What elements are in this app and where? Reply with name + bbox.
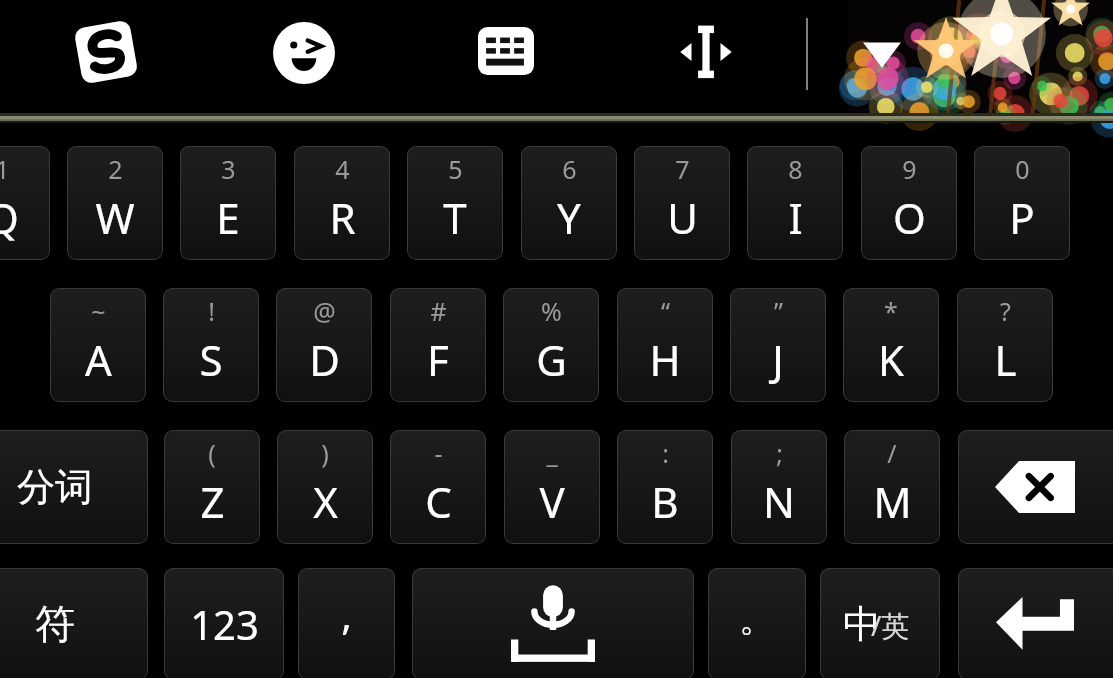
staticText: %	[541, 294, 562, 328]
staticText: L	[994, 331, 1017, 388]
staticText: B	[651, 473, 679, 530]
staticText: Q	[0, 189, 19, 246]
staticText: 9	[902, 152, 917, 186]
staticText: !	[208, 294, 215, 328]
button[interactable]: 分词	[0, 430, 148, 544]
staticText: Y	[557, 189, 581, 246]
button[interactable]: H	[617, 288, 713, 402]
button[interactable]: U	[634, 146, 730, 260]
staticText: )	[321, 436, 329, 470]
staticText: C	[425, 473, 452, 530]
button[interactable]: P	[974, 146, 1070, 260]
staticText: Z	[200, 473, 225, 530]
button[interactable]: R	[294, 146, 390, 260]
staticText: D	[309, 331, 340, 388]
button[interactable]: More options	[860, 36, 904, 72]
button[interactable]: O	[861, 146, 957, 260]
staticText: R	[329, 189, 356, 246]
staticText: ”	[774, 294, 783, 328]
staticText: ~	[91, 294, 106, 328]
staticText: J	[772, 331, 784, 388]
staticText: K	[878, 331, 904, 388]
button[interactable]: T	[407, 146, 503, 260]
staticText: 7	[675, 152, 690, 186]
staticText: ,	[341, 587, 352, 641]
button[interactable]: S	[163, 288, 259, 402]
staticText: V	[539, 473, 565, 530]
staticText: _	[546, 436, 558, 470]
staticText: 分词	[17, 463, 93, 511]
staticText: O	[893, 189, 926, 246]
staticText: 6	[562, 152, 577, 186]
button[interactable]: Move cursor	[673, 22, 739, 82]
staticText: E	[216, 189, 240, 246]
staticText: #	[430, 294, 447, 328]
button[interactable]: Backspace	[958, 430, 1113, 544]
staticText: F	[427, 331, 449, 388]
staticText: 0	[1015, 152, 1030, 186]
button[interactable]: Emoji	[272, 22, 336, 84]
button[interactable]: X	[277, 430, 373, 544]
button[interactable]: 符	[0, 568, 148, 678]
staticText: (	[208, 436, 216, 470]
button[interactable]: E	[180, 146, 276, 260]
button[interactable]: G	[503, 288, 599, 402]
staticText: 符	[35, 599, 75, 649]
button[interactable]: ,	[298, 568, 395, 678]
button[interactable]: W	[67, 146, 163, 260]
staticText: I	[788, 189, 803, 246]
button[interactable]: V	[504, 430, 600, 544]
button[interactable]: N	[731, 430, 827, 544]
staticText: 4	[335, 152, 350, 186]
staticText: -	[434, 436, 443, 470]
staticText: M	[873, 473, 912, 530]
button[interactable]: C	[390, 430, 486, 544]
button[interactable]: Theme	[848, 0, 1113, 113]
button[interactable]: Space, voice input	[412, 568, 694, 678]
button[interactable]: D	[276, 288, 372, 402]
button[interactable]: Q	[0, 146, 50, 260]
staticText: 。	[739, 596, 775, 641]
staticText: A	[85, 331, 112, 388]
staticText: S	[199, 331, 223, 388]
button[interactable]: Y	[521, 146, 617, 260]
button[interactable]: Enter	[958, 568, 1113, 678]
button[interactable]: A	[50, 288, 146, 402]
staticText: W	[95, 189, 135, 246]
staticText: ;	[776, 436, 783, 470]
staticText: @	[313, 294, 336, 328]
staticText: X	[313, 473, 338, 530]
staticText: 123	[190, 597, 259, 651]
button[interactable]: Z	[164, 430, 260, 544]
staticText: N	[763, 473, 795, 530]
staticText: 1	[0, 152, 10, 186]
staticText: “	[661, 294, 670, 328]
staticText: T	[443, 189, 467, 246]
button[interactable]: 。	[708, 568, 806, 678]
button[interactable]: L	[957, 288, 1053, 402]
staticText: 2	[108, 152, 123, 186]
staticText: *	[884, 294, 898, 328]
button[interactable]: 中	[820, 568, 940, 678]
staticText: /	[887, 436, 897, 470]
button[interactable]: I	[747, 146, 843, 260]
staticText: ?	[1000, 294, 1011, 328]
staticText: 中	[843, 600, 881, 648]
staticText: :	[662, 436, 669, 470]
button[interactable]: 123	[164, 568, 284, 678]
button[interactable]: Sogou menu	[70, 17, 142, 87]
staticText: H	[649, 331, 681, 388]
staticText: /英	[871, 606, 910, 644]
button[interactable]: F	[390, 288, 486, 402]
button[interactable]: J	[730, 288, 826, 402]
staticText: G	[536, 331, 567, 388]
staticText: 5	[448, 152, 463, 186]
button[interactable]: Keyboard layout	[478, 27, 534, 75]
button[interactable]: B	[617, 430, 713, 544]
staticText: U	[667, 189, 698, 246]
staticText: P	[1009, 189, 1035, 246]
staticText: 8	[788, 152, 803, 186]
staticText: 3	[221, 152, 236, 186]
button[interactable]: K	[843, 288, 939, 402]
button[interactable]: M	[844, 430, 940, 544]
